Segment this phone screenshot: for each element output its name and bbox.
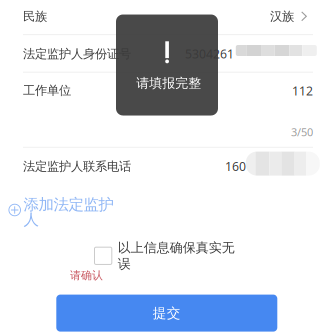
button[interactable]: 以上信息确保真实无误	[94, 247, 244, 265]
staticText: 112	[292, 82, 313, 99]
staticText: 民族	[23, 9, 47, 24]
button[interactable]: 提交	[56, 295, 277, 332]
staticText: 法定监护人联系电话	[23, 159, 131, 174]
staticText: 添加法定监护	[23, 195, 113, 214]
staticText: 法定监护人身份证号	[23, 46, 131, 62]
button[interactable]: 添加法定监护	[8, 194, 126, 234]
button[interactable]: 民族	[0, 0, 323, 33]
staticText: 3/50	[291, 125, 313, 139]
staticText: 5304261	[185, 45, 234, 62]
staticText: 人	[23, 210, 38, 229]
staticText: 汉族	[270, 9, 294, 24]
staticText: 160	[225, 158, 246, 174]
staticText: 请确认	[70, 268, 103, 282]
staticText: 请填报完整	[136, 75, 201, 91]
staticText: 提交	[153, 304, 181, 322]
staticText: 工作单位	[23, 83, 71, 98]
staticText: 以上信息确保真实无误	[118, 239, 235, 272]
